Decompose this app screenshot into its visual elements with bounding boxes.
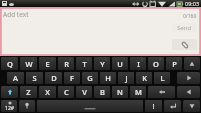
- staticText: Q: [7, 59, 13, 69]
- staticText: 4: [69, 57, 72, 62]
- staticText: V: [82, 87, 87, 97]
- staticText: N: [117, 87, 123, 97]
- button[interactable]: Enter: [164, 100, 181, 112]
- button[interactable]: S: [26, 72, 43, 84]
- button[interactable]: Send: [172, 23, 197, 33]
- staticText: R: [64, 59, 69, 69]
- button[interactable]: Voice input: [19, 100, 35, 112]
- staticText: K: [142, 73, 147, 83]
- staticText: 7: [123, 57, 126, 62]
- staticText: 12#: [5, 105, 14, 112]
- staticText: H: [105, 73, 111, 83]
- button[interactable]: Left: [177, 86, 200, 98]
- button[interactable]: M: [130, 86, 146, 98]
- button[interactable]: X: [39, 86, 56, 98]
- button[interactable]: E: [39, 57, 56, 70]
- staticText: A: [13, 73, 18, 83]
- staticText: M: [135, 87, 142, 97]
- button[interactable]: Attach: [172, 39, 197, 50]
- button[interactable]: Hide keyboard: [183, 100, 200, 112]
- staticText: 0: [177, 57, 180, 62]
- staticText: 9: [159, 57, 162, 62]
- button[interactable]: D: [45, 72, 62, 84]
- staticText: S: [32, 73, 37, 83]
- button[interactable]: J: [118, 72, 134, 84]
- button[interactable]: P: [166, 57, 182, 70]
- button[interactable]: Symbols: [1, 100, 17, 112]
- button[interactable]: L: [154, 72, 170, 84]
- button[interactable]: N: [112, 86, 128, 98]
- staticText: B: [100, 87, 105, 97]
- staticText: C: [64, 87, 69, 97]
- staticText: O: [153, 59, 159, 69]
- button[interactable]: Space: [37, 100, 143, 112]
- button[interactable]: I: [130, 57, 146, 70]
- button[interactable]: G: [82, 72, 98, 84]
- staticText: D: [51, 73, 57, 83]
- button[interactable]: F: [64, 72, 80, 84]
- button[interactable]: U: [112, 57, 128, 70]
- staticText: 0/160: [183, 13, 197, 20]
- button[interactable]: R: [58, 57, 74, 70]
- button[interactable]: K: [136, 72, 152, 84]
- staticText: Z: [26, 87, 31, 97]
- staticText: Add text: [3, 10, 29, 19]
- button[interactable]: B: [94, 86, 110, 98]
- staticText: 6: [105, 57, 108, 62]
- button[interactable]: Up: [184, 57, 200, 70]
- staticText: T: [82, 59, 87, 69]
- button[interactable]: V: [76, 86, 92, 98]
- staticText: 5: [87, 57, 90, 62]
- button[interactable]: C: [58, 86, 74, 98]
- staticText: G: [87, 73, 93, 83]
- button[interactable]: Right: [177, 72, 200, 84]
- staticText: F: [70, 73, 74, 83]
- staticText: X: [45, 87, 50, 97]
- staticText: E: [45, 59, 50, 69]
- staticText: L: [160, 73, 165, 83]
- staticText: 09:03: [185, 0, 200, 7]
- button[interactable]: A: [7, 72, 24, 84]
- staticText: !: [152, 101, 155, 111]
- staticText: J: [125, 73, 128, 83]
- button[interactable]: Backspace: [148, 86, 175, 98]
- button[interactable]: Z: [20, 86, 37, 98]
- button[interactable]: T: [76, 57, 92, 70]
- staticText: Y: [100, 59, 105, 69]
- button[interactable]: H: [100, 72, 116, 84]
- button[interactable]: !: [145, 100, 162, 112]
- button[interactable]: O: [148, 57, 164, 70]
- staticText: 1: [13, 57, 16, 62]
- staticText: W: [25, 59, 33, 69]
- button[interactable]: Shift: [1, 86, 18, 98]
- staticText: 3: [51, 57, 54, 62]
- button[interactable]: W: [20, 57, 37, 70]
- staticText: 2: [32, 57, 35, 62]
- button[interactable]: Q: [1, 57, 18, 70]
- staticText: Send: [177, 24, 192, 32]
- button[interactable]: Y: [94, 57, 110, 70]
- staticText: I: [137, 59, 140, 69]
- staticText: P: [172, 59, 177, 69]
- staticText: 8: [141, 57, 144, 62]
- staticText: U: [117, 59, 123, 69]
